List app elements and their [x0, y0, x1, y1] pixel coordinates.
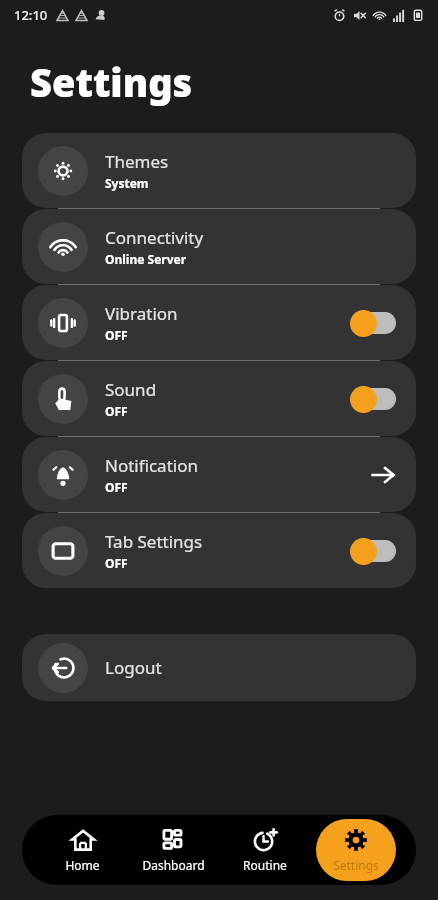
button[interactable]: Open notification settings — [366, 458, 400, 492]
staticText: Vibration — [105, 302, 178, 325]
staticText: 12:10 — [14, 6, 48, 24]
button[interactable]: Toggle — [350, 536, 400, 566]
staticText: System — [105, 175, 149, 191]
staticText: Logout — [105, 656, 162, 679]
button[interactable]: Vibration — [22, 285, 416, 360]
button[interactable]: Routine — [225, 819, 305, 881]
button[interactable]: Toggle — [350, 308, 400, 338]
button[interactable]: Themes — [22, 133, 416, 208]
button[interactable]: Sound — [22, 361, 416, 436]
staticText: Online Server — [105, 251, 187, 267]
staticText: OFF — [105, 479, 128, 495]
staticText: Notification — [105, 454, 198, 477]
button[interactable]: Toggle — [350, 384, 400, 414]
staticText: OFF — [105, 403, 128, 419]
staticText: Sound — [105, 378, 157, 401]
staticText: Connectivity — [105, 226, 204, 249]
staticText: Home — [65, 857, 100, 873]
staticText: OFF — [105, 555, 128, 571]
button[interactable]: Logout — [22, 634, 416, 701]
button[interactable]: Tab Settings — [22, 513, 416, 588]
staticText: Dashboard — [142, 857, 205, 873]
button[interactable]: Home — [42, 819, 122, 881]
staticText: Routine — [243, 857, 287, 873]
staticText: OFF — [105, 327, 128, 343]
staticText: Settings — [30, 56, 193, 108]
staticText: Settings — [333, 857, 379, 873]
button[interactable]: Connectivity — [22, 209, 416, 284]
button[interactable]: Settings — [316, 819, 396, 881]
staticText: Themes — [105, 150, 169, 173]
button[interactable]: Notification — [22, 437, 416, 512]
button[interactable]: Dashboard — [133, 819, 213, 881]
staticText: Tab Settings — [105, 530, 203, 553]
